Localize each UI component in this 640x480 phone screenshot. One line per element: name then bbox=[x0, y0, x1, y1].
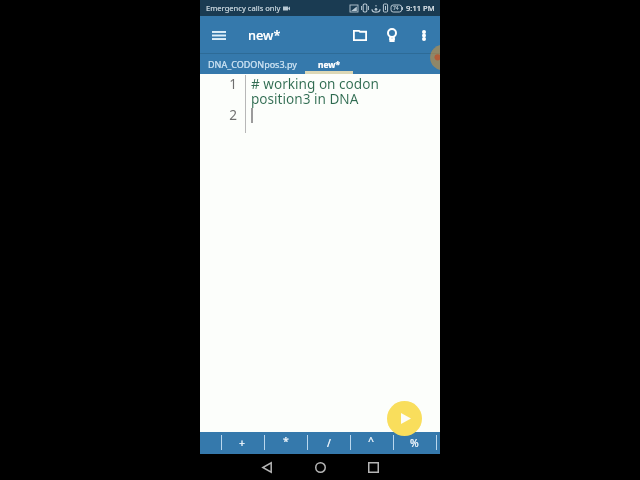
button[interactable]: DNA_CODONpos3.py bbox=[202, 53, 303, 74]
button[interactable]: * bbox=[264, 432, 307, 454]
staticText: new* bbox=[318, 59, 341, 70]
button[interactable]: Navigation menu bbox=[205, 24, 233, 46]
button[interactable]: Back bbox=[254, 454, 280, 480]
button[interactable]: Open file bbox=[347, 22, 373, 48]
staticText: # working on codon position3 in DNA bbox=[251, 74, 379, 108]
staticText: * bbox=[283, 434, 289, 448]
staticText: + bbox=[239, 436, 246, 450]
staticText: 2 bbox=[219, 105, 237, 124]
button[interactable]: new* bbox=[305, 53, 353, 74]
button[interactable]: Recent apps bbox=[360, 454, 386, 480]
staticText: new* bbox=[248, 26, 281, 43]
staticText: 1 bbox=[219, 74, 237, 93]
button[interactable]: Hints bbox=[379, 22, 405, 48]
staticText: / bbox=[327, 436, 331, 450]
button[interactable]: Home bbox=[307, 454, 333, 480]
button[interactable]: ^ bbox=[350, 432, 393, 454]
staticText: ^ bbox=[368, 434, 375, 448]
button[interactable]: More options bbox=[411, 22, 437, 48]
staticText: DNA_CODONpos3.py bbox=[208, 58, 297, 70]
button[interactable]: % bbox=[393, 432, 436, 454]
staticText: 9:11 PM bbox=[406, 3, 435, 13]
button[interactable]: + bbox=[221, 432, 264, 454]
staticText: % bbox=[410, 436, 419, 450]
staticText: Emergency calls only bbox=[206, 3, 281, 13]
staticText: 74 bbox=[393, 5, 399, 12]
button[interactable]: Run bbox=[387, 401, 422, 436]
button[interactable]: / bbox=[307, 432, 350, 454]
